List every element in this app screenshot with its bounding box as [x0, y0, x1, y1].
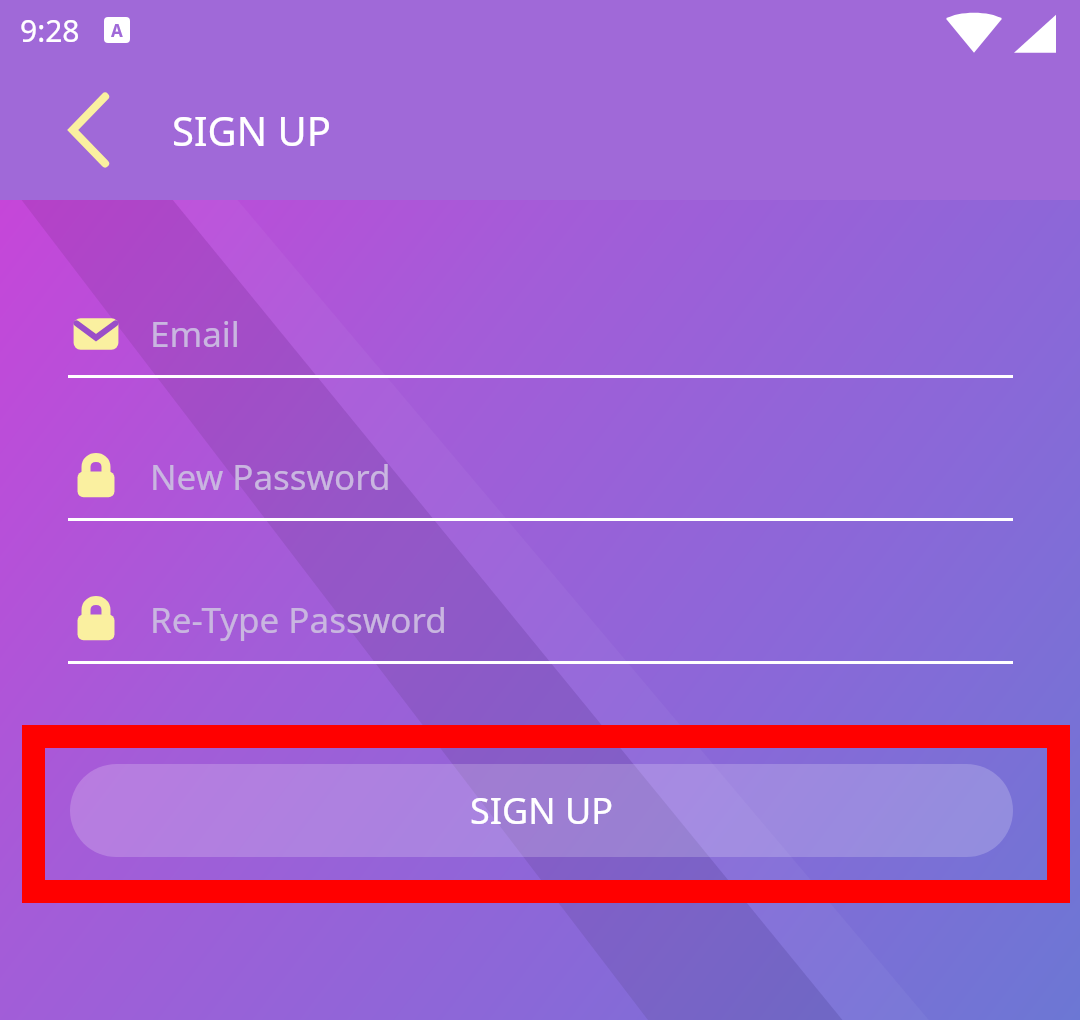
staticText: Re-Type Password — [150, 596, 447, 644]
staticText: 9:28 — [20, 10, 80, 51]
button[interactable]: New Password — [68, 444, 1013, 521]
button[interactable]: Re-Type Password — [68, 587, 1013, 664]
button[interactable]: SIGN UP — [70, 764, 1013, 857]
staticText: SIGN UP — [470, 786, 613, 835]
staticText: SIGN UP — [172, 103, 331, 157]
staticText: New Password — [150, 453, 391, 501]
staticText: A — [111, 19, 123, 42]
button[interactable]: Email — [68, 301, 1013, 378]
button[interactable]: Back — [52, 92, 128, 168]
staticText: Email — [150, 310, 240, 358]
